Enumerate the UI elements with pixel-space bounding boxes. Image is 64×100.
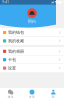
button[interactable]: 我: [43, 88, 64, 100]
button[interactable]: 微信: [0, 88, 21, 100]
staticText: 发现: [29, 95, 35, 98]
staticText: 9:41: [2, 0, 9, 4]
button[interactable]: 设置: [0, 64, 64, 72]
button[interactable]: 卡包: [0, 56, 64, 64]
staticText: 设置: [8, 66, 16, 71]
staticText: 我的相册: [8, 49, 24, 54]
button[interactable]: 我的钱包: [0, 28, 64, 36]
button[interactable]: 发现: [21, 88, 43, 100]
button[interactable]: 我的相册: [0, 47, 64, 55]
staticText: 卡包: [8, 57, 16, 62]
staticText: 我的钱包: [8, 30, 24, 35]
button[interactable]: 我的收藏: [0, 37, 64, 45]
staticText: 我的收藏: [8, 38, 24, 43]
staticText: 我: [52, 95, 55, 98]
staticText: 9:41: [2, 0, 9, 4]
staticText: 阿白: [28, 19, 36, 24]
staticText: 微信: [8, 95, 14, 98]
